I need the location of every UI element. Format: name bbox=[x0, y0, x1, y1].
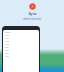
button[interactable] bbox=[3, 52, 39, 55]
button[interactable] bbox=[3, 31, 39, 34]
button[interactable] bbox=[3, 37, 39, 40]
button[interactable] bbox=[3, 49, 39, 52]
staticText: administrator bbox=[23, 17, 42, 21]
button[interactable] bbox=[3, 34, 39, 37]
button[interactable] bbox=[3, 46, 39, 49]
button[interactable] bbox=[3, 55, 39, 58]
button[interactable] bbox=[3, 43, 39, 46]
button[interactable] bbox=[3, 40, 39, 43]
button[interactable]: App logo bbox=[29, 3, 36, 10]
staticText: Sync bbox=[28, 11, 37, 16]
